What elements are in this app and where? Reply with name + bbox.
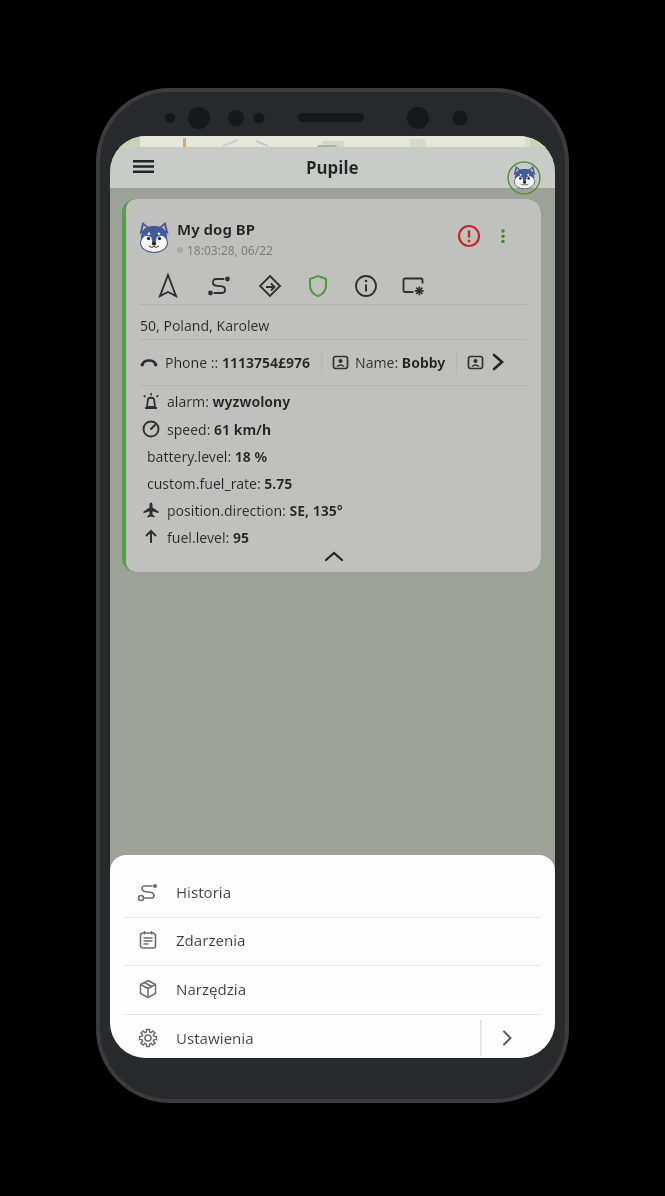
- staticText: custom.fuel_rate: 5.75: [147, 474, 293, 493]
- button[interactable]: Ustawienia: [110, 1014, 555, 1058]
- staticText: Name: Bobby: [355, 353, 446, 372]
- staticText: Narzędzia: [176, 979, 247, 999]
- staticText: alarm: wyzwolony: [167, 392, 291, 411]
- staticText: battery.level: 18 %: [147, 447, 268, 466]
- staticText: Zdarzenia: [176, 930, 246, 950]
- staticText: Pupile: [306, 156, 359, 179]
- staticText: 50, Poland, Karolew: [140, 316, 270, 335]
- button[interactable]: [130, 153, 158, 181]
- staticText: position.direction: SE, 135°: [167, 501, 343, 520]
- button[interactable]: [455, 222, 485, 252]
- button[interactable]: My dog BP: [136, 217, 541, 259]
- staticText: Ustawienia: [176, 1028, 254, 1048]
- button[interactable]: Narzędzia: [110, 965, 555, 1013]
- staticText: My dog BP: [177, 219, 256, 239]
- staticText: 18:03:28, 06/22: [187, 242, 273, 258]
- staticText: Phone :: 1113754£976: [165, 353, 311, 372]
- staticText: fuel.level: 95: [167, 528, 249, 547]
- button[interactable]: Zdarzenia: [110, 916, 555, 964]
- staticText: speed: 61 km/h: [167, 420, 272, 439]
- button[interactable]: [322, 549, 346, 563]
- button[interactable]: [507, 161, 541, 195]
- button[interactable]: [490, 222, 516, 248]
- button[interactable]: Phone :: 1113754£976: [140, 347, 541, 377]
- button[interactable]: Historia: [110, 868, 555, 916]
- staticText: Historia: [176, 882, 232, 902]
